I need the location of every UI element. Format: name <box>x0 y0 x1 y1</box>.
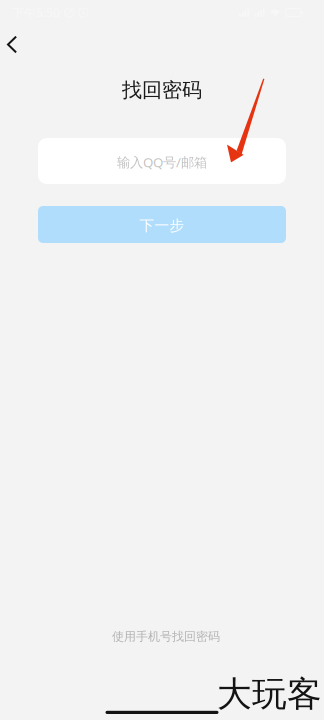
button[interactable]: 使用手机号找回密码 <box>108 625 216 648</box>
staticText: 输入QQ号/邮箱 <box>117 153 207 171</box>
staticText: 使用手机号找回密码 <box>112 629 220 644</box>
button[interactable]: 输入QQ号/邮箱 <box>0 138 324 184</box>
staticText: 大玩客 <box>217 673 322 716</box>
button[interactable]: 下一步 <box>0 206 324 243</box>
button[interactable]: 返回 <box>0 26 24 70</box>
staticText: 找回密码 <box>122 78 202 102</box>
staticText: 下一步 <box>139 216 184 234</box>
